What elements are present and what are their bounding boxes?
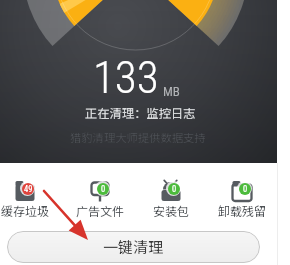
staticText: MB: [163, 84, 180, 99]
staticText: 卸载残留: [218, 202, 267, 219]
staticText: 0: [172, 184, 177, 194]
button[interactable]: 0: [209, 177, 275, 219]
staticText: 猎豹清理大师提供数据支持: [70, 129, 206, 145]
staticText: 133: [93, 51, 159, 104]
staticText: 0: [101, 184, 106, 194]
staticText: 正在清理：监控日志: [85, 104, 196, 122]
staticText: 0: [243, 184, 248, 194]
button[interactable]: 0: [138, 177, 204, 219]
staticText: 安装包: [153, 202, 190, 219]
staticText: 缓存垃圾: [1, 202, 50, 219]
button[interactable]: 49: [0, 177, 58, 219]
button[interactable]: 0: [67, 177, 133, 219]
staticText: 49: [24, 184, 33, 194]
staticText: 一键清理: [103, 236, 164, 258]
button[interactable]: 一键清理: [7, 231, 260, 263]
staticText: 广告文件: [76, 202, 125, 219]
